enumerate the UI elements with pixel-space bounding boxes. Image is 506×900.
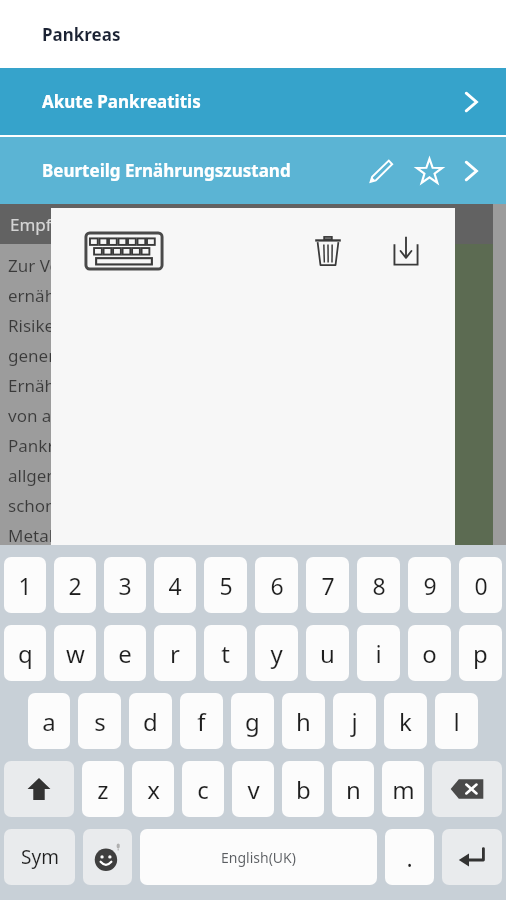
- staticText: f: [197, 705, 206, 738]
- button[interactable]: v: [232, 761, 274, 817]
- staticText: 6: [270, 570, 284, 601]
- staticText: Akute Pankreatitis: [42, 90, 454, 113]
- staticText: c: [197, 773, 209, 806]
- button[interactable]: y: [255, 625, 298, 681]
- staticText: w: [66, 637, 85, 670]
- staticText: j: [351, 705, 358, 738]
- button[interactable]: a: [28, 693, 70, 749]
- button[interactable]: 7: [306, 557, 349, 613]
- button[interactable]: z: [82, 761, 124, 817]
- button[interactable]: o: [408, 625, 451, 681]
- button[interactable]: b: [282, 761, 324, 817]
- button[interactable]: Enter: [442, 829, 502, 885]
- staticText: Zur Vermeidung einer Mangel-: [8, 254, 254, 277]
- button[interactable]: Akute Pankreatitis: [0, 68, 506, 135]
- staticText: von akuter und chronischer: [8, 404, 228, 427]
- button[interactable]: l: [435, 693, 478, 749]
- button[interactable]: u: [306, 625, 349, 681]
- staticText: 7: [321, 570, 335, 601]
- button[interactable]: Backspace: [432, 761, 502, 817]
- button[interactable]: d: [129, 693, 172, 749]
- button[interactable]: x: [132, 761, 174, 817]
- staticText: a: [42, 705, 56, 738]
- button[interactable]: 3: [104, 557, 146, 613]
- staticText: 3: [118, 570, 132, 601]
- staticText: Ernährung achten. Patienten: [8, 374, 239, 397]
- button[interactable]: Save: [381, 226, 431, 276]
- staticText: allgemein ausgewogen und: [8, 464, 230, 487]
- staticText: e: [118, 637, 132, 670]
- staticText: b: [296, 773, 311, 806]
- staticText: Pankreas: [42, 23, 121, 46]
- staticText: x: [147, 773, 160, 806]
- staticText: y: [270, 637, 283, 670]
- button[interactable]: Delete: [303, 226, 353, 276]
- button[interactable]: p: [459, 625, 502, 681]
- button[interactable]: Emoji: [83, 829, 132, 885]
- button[interactable]: Keyboard: [81, 228, 167, 274]
- staticText: schonend ernähren. Marker: [8, 494, 232, 517]
- staticText: 9: [423, 570, 437, 601]
- button[interactable]: q: [4, 625, 46, 681]
- button[interactable]: 8: [357, 557, 400, 613]
- button[interactable]: j: [333, 693, 376, 749]
- button[interactable]: t: [204, 625, 247, 681]
- button[interactable]: 9: [408, 557, 451, 613]
- staticText: 5: [219, 570, 233, 601]
- button[interactable]: n: [332, 761, 374, 817]
- button[interactable]: k: [384, 693, 427, 749]
- button[interactable]: s: [78, 693, 121, 749]
- button[interactable]: w: [54, 625, 96, 681]
- staticText: Risiken sollten Patienten: [8, 314, 204, 337]
- staticText: 8: [372, 570, 386, 601]
- button[interactable]: m: [382, 761, 424, 817]
- staticText: English(UK): [221, 848, 296, 867]
- staticText: q: [18, 637, 33, 670]
- button[interactable]: Edit: [362, 152, 400, 190]
- staticText: s: [94, 705, 106, 738]
- staticText: .: [406, 842, 413, 873]
- button[interactable]: Shift: [4, 761, 74, 817]
- staticText: k: [399, 705, 412, 738]
- button[interactable]: c: [182, 761, 224, 817]
- button[interactable]: f: [180, 693, 223, 749]
- button[interactable]: i: [357, 625, 400, 681]
- staticText: d: [143, 705, 158, 738]
- staticText: h: [296, 705, 311, 738]
- button[interactable]: Beurteilg Ernährungszustand: [0, 137, 506, 204]
- staticText: Empfehlungen zur Ernährung bei Pankreati…: [10, 213, 380, 236]
- button[interactable]: Sym: [4, 829, 75, 885]
- staticText: Metabolismus, Ernährungs-: [8, 524, 229, 547]
- staticText: u: [320, 637, 335, 670]
- staticText: 1: [18, 570, 32, 601]
- button[interactable]: 5: [204, 557, 247, 613]
- staticText: v: [247, 773, 260, 806]
- staticText: 2: [68, 570, 82, 601]
- staticText: Beurteilg Ernährungszustand: [42, 159, 362, 182]
- staticText: 4: [168, 570, 182, 601]
- button[interactable]: 2: [54, 557, 96, 613]
- staticText: r: [170, 637, 180, 670]
- button[interactable]: e: [104, 625, 146, 681]
- staticText: m: [392, 773, 415, 806]
- staticText: o: [422, 637, 437, 670]
- staticText: i: [375, 637, 382, 670]
- staticText: Pankreatitis sollten sich: [8, 434, 196, 457]
- button[interactable]: g: [231, 693, 274, 749]
- staticText: ernährung und deren: [8, 284, 181, 307]
- button[interactable]: English(UK): [140, 829, 377, 885]
- button[interactable]: 0: [459, 557, 502, 613]
- staticText: l: [453, 705, 460, 738]
- staticText: n: [346, 773, 361, 806]
- button[interactable]: 4: [154, 557, 196, 613]
- button[interactable]: r: [154, 625, 196, 681]
- staticText: generell auf eine ausreichende: [8, 344, 255, 367]
- button[interactable]: h: [282, 693, 325, 749]
- staticText: Sym: [21, 844, 59, 870]
- staticText: z: [97, 773, 109, 806]
- button[interactable]: 1: [4, 557, 46, 613]
- button[interactable]: 6: [255, 557, 298, 613]
- button[interactable]: .: [385, 829, 434, 885]
- staticText: 0: [474, 570, 488, 601]
- button[interactable]: Favorite: [410, 152, 448, 190]
